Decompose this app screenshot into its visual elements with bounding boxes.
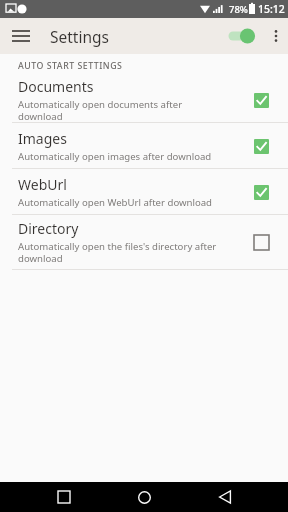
- staticText: 78%: [229, 3, 248, 16]
- staticText: AUTO START SETTINGS: [18, 60, 123, 72]
- button[interactable]: Checked: [248, 133, 274, 159]
- button[interactable]: Home: [127, 482, 161, 512]
- staticText: Directory: [18, 219, 79, 238]
- staticText: Automatically open documents after downl…: [18, 98, 228, 122]
- button[interactable]: Open navigation drawer: [6, 21, 36, 51]
- staticText: Images: [18, 129, 67, 148]
- button[interactable]: Documents: [0, 77, 288, 122]
- button[interactable]: Recent apps: [47, 482, 81, 512]
- staticText: Settings: [50, 26, 109, 47]
- button[interactable]: Checked: [248, 179, 274, 205]
- staticText: Automatically open WebUrl after download: [18, 196, 213, 209]
- staticText: WebUrl: [18, 175, 67, 194]
- staticText: Documents: [18, 77, 94, 96]
- button[interactable]: Checked: [248, 87, 274, 113]
- button[interactable]: More options: [264, 20, 288, 52]
- staticText: Automatically open the files's directory…: [18, 240, 228, 265]
- button[interactable]: WebUrl: [0, 169, 288, 214]
- button[interactable]: Directory: [0, 215, 288, 269]
- button[interactable]: Toggle auto start: [220, 21, 260, 51]
- button[interactable]: Unchecked: [248, 229, 274, 255]
- button[interactable]: Back: [208, 482, 242, 512]
- button[interactable]: Images: [0, 123, 288, 168]
- staticText: Automatically open images after download: [18, 150, 212, 163]
- staticText: 15:12: [258, 2, 285, 16]
